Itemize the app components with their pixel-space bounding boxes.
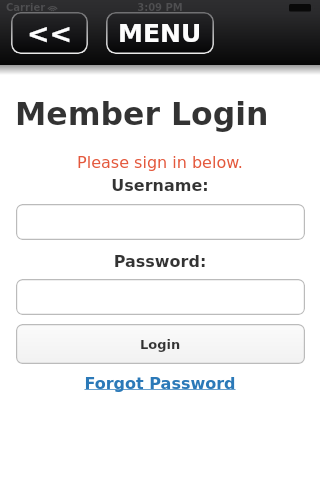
staticText: 3:09 PM (0, 2, 320, 14)
staticText: Password: (0, 252, 320, 271)
button[interactable] (16, 279, 305, 315)
button[interactable]: MENU (106, 12, 214, 54)
staticText: << (27, 18, 73, 49)
button[interactable]: Back (11, 12, 88, 54)
staticText: Username: (0, 176, 320, 195)
button[interactable] (16, 204, 305, 240)
staticText: Member Login (15, 96, 269, 133)
staticText: MENU (118, 19, 202, 48)
staticText: Carrier (6, 2, 46, 14)
button[interactable]: Forgot Password (0, 374, 320, 393)
button[interactable]: Login (16, 324, 305, 364)
staticText: Please sign in below. (0, 153, 320, 172)
staticText: Login (140, 337, 181, 352)
